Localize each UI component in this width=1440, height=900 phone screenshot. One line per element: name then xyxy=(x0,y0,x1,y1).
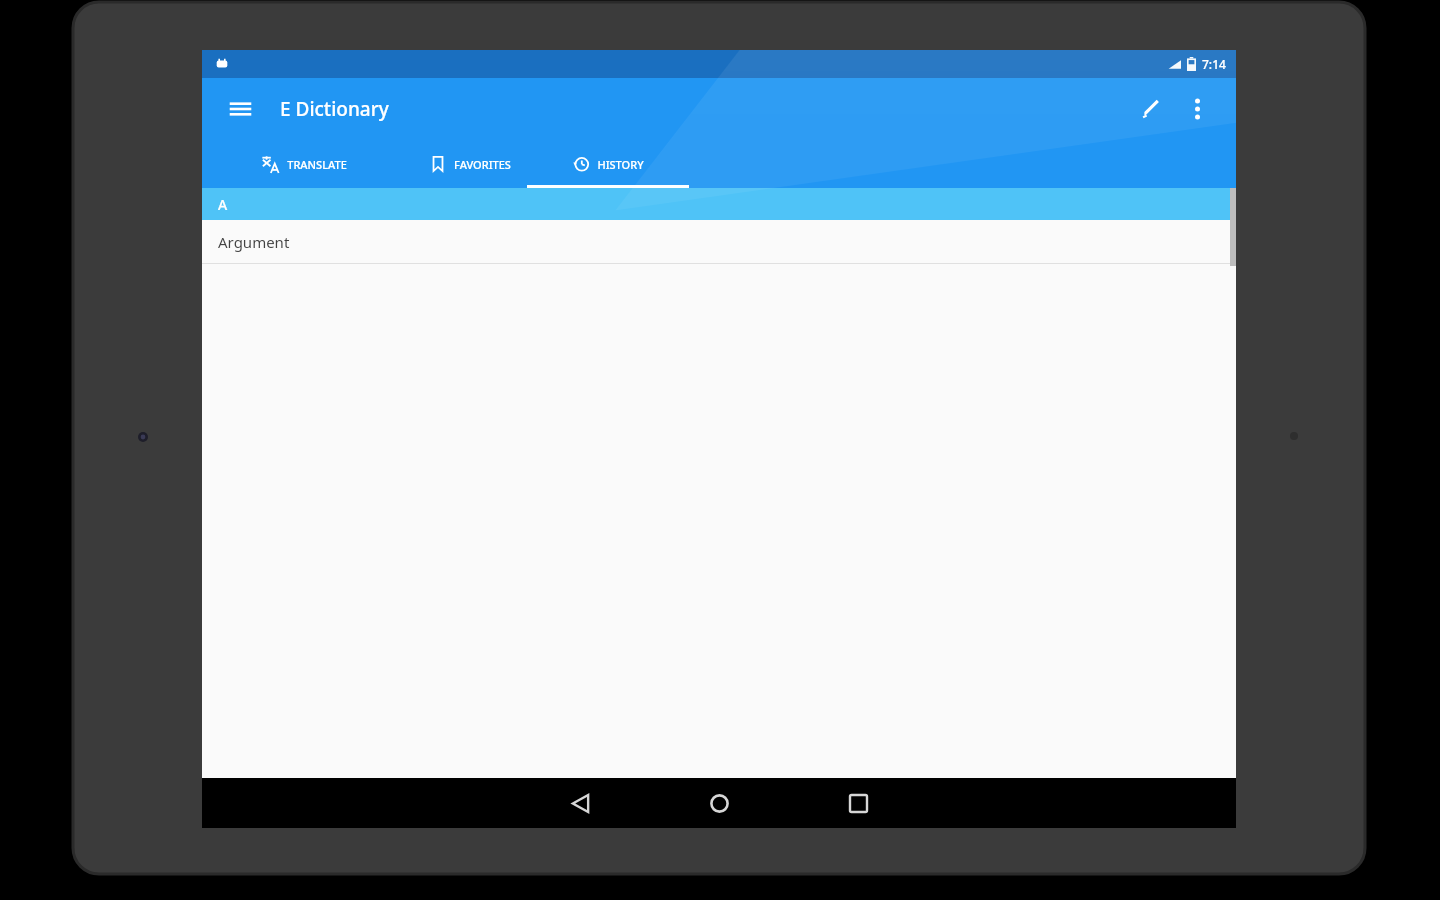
button[interactable]: More options xyxy=(1176,88,1218,130)
button[interactable]: Argument xyxy=(202,220,1236,264)
button[interactable]: Home xyxy=(696,780,742,826)
button[interactable]: FAVORITES xyxy=(390,140,550,188)
button[interactable]: TRANSLATE xyxy=(224,140,384,188)
staticText: A xyxy=(218,195,228,214)
button[interactable]: HISTORY xyxy=(527,140,689,188)
staticText: Argument xyxy=(218,232,290,252)
button[interactable]: Back xyxy=(557,780,603,826)
button[interactable]: Recent apps xyxy=(835,780,881,826)
button[interactable]: Edit xyxy=(1130,88,1172,130)
staticText: E Dictionary xyxy=(280,96,389,122)
staticText: FAVORITES xyxy=(454,157,511,172)
staticText: TRANSLATE xyxy=(287,157,347,172)
staticText: 7:14 xyxy=(1202,56,1226,72)
button[interactable]: Open navigation drawer xyxy=(222,91,258,127)
staticText: HISTORY xyxy=(597,157,644,172)
